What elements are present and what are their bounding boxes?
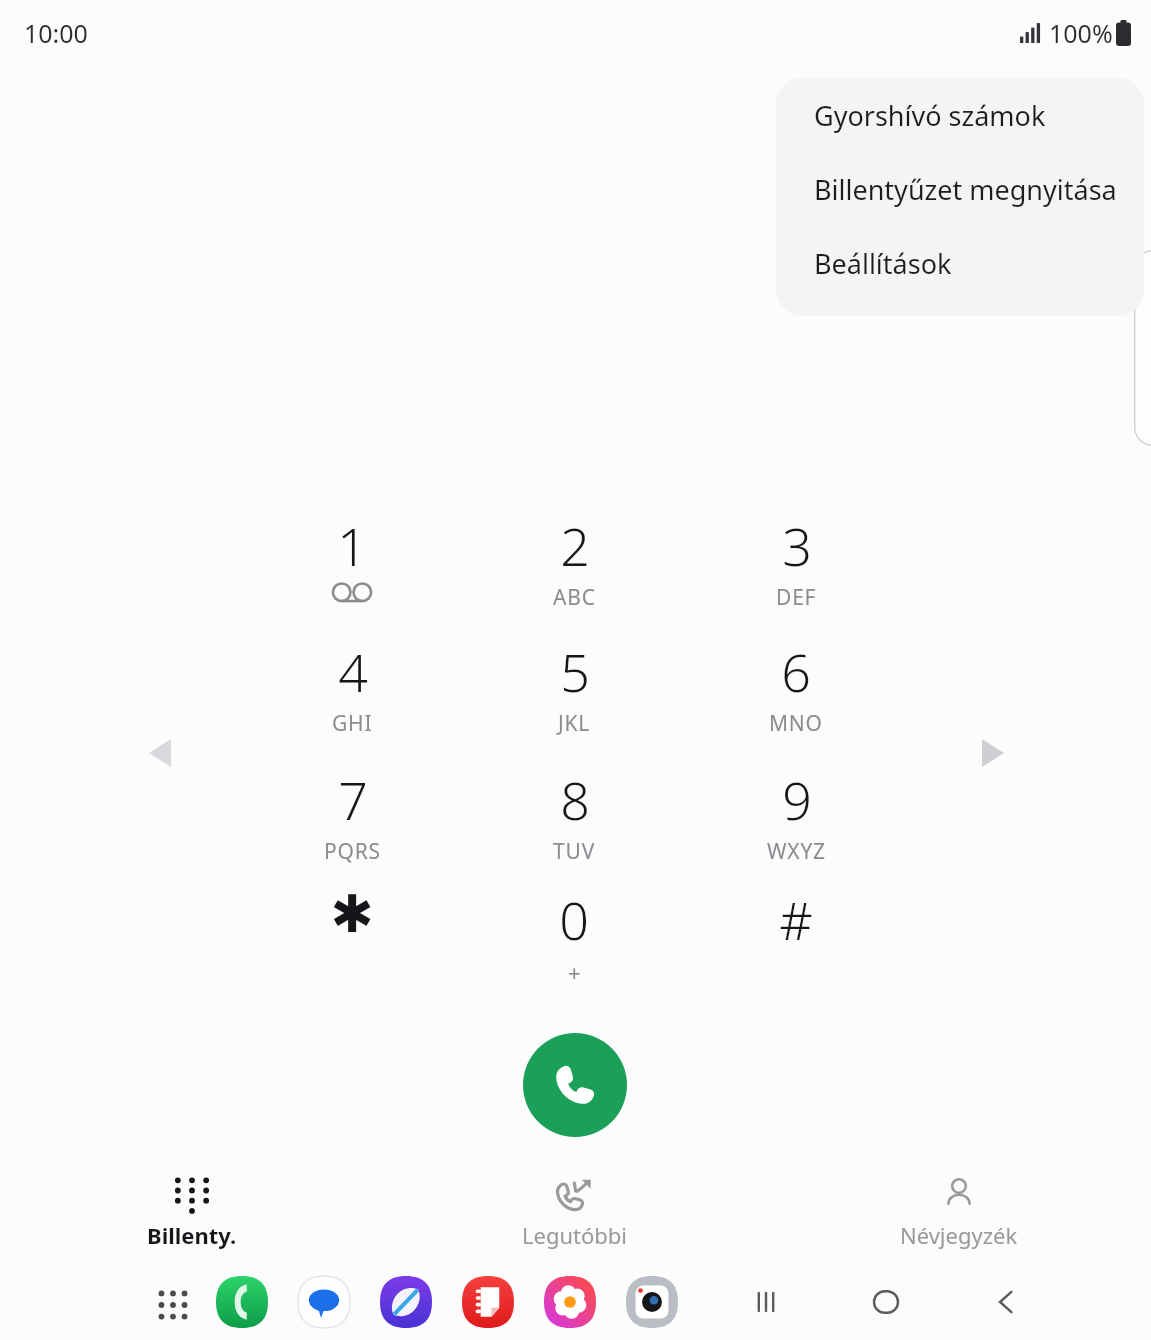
- staticText: JKL: [558, 709, 591, 738]
- button[interactable]: Billenty.: [0, 1172, 383, 1254]
- button[interactable]: Billentyűzet megnyitása: [776, 152, 1144, 226]
- staticText: #: [779, 884, 813, 955]
- staticText: 3: [782, 510, 812, 581]
- staticText: Legutóbbi: [522, 1220, 628, 1250]
- button[interactable]: 3: [721, 510, 871, 622]
- button[interactable]: Messages: [296, 1274, 352, 1330]
- staticText: 10:00: [24, 16, 88, 50]
- staticText: Névjegyzék: [900, 1220, 1018, 1250]
- button[interactable]: Recents: [740, 1276, 792, 1328]
- staticText: 2: [560, 510, 590, 581]
- button[interactable]: Névjegyzék: [767, 1172, 1151, 1254]
- button[interactable]: Gyorshívó számok: [776, 78, 1144, 152]
- button[interactable]: 8: [499, 764, 649, 876]
- staticText: ✱: [330, 884, 374, 945]
- button[interactable]: 4: [277, 636, 427, 748]
- button[interactable]: 2: [499, 510, 649, 622]
- button[interactable]: Previous page: [130, 722, 190, 784]
- staticText: 100%: [1049, 16, 1113, 50]
- button[interactable]: Internet: [378, 1274, 434, 1330]
- staticText: Billentyűzet megnyitása: [814, 171, 1117, 208]
- button[interactable]: 9: [721, 764, 871, 876]
- staticText: 7: [338, 764, 368, 835]
- staticText: GHI: [332, 709, 373, 738]
- staticText: Billenty.: [147, 1220, 237, 1250]
- staticText: 4: [338, 636, 368, 707]
- button[interactable]: 6: [721, 636, 871, 748]
- staticText: 1: [337, 510, 367, 581]
- staticText: PQRS: [324, 837, 381, 866]
- staticText: Gyorshívó számok: [814, 97, 1046, 134]
- staticText: 9: [782, 764, 812, 835]
- button[interactable]: Phone: [214, 1274, 270, 1330]
- button[interactable]: Camera: [624, 1274, 680, 1330]
- button[interactable]: Back: [980, 1276, 1032, 1328]
- staticText: 5: [560, 636, 590, 707]
- button[interactable]: 7: [277, 764, 427, 876]
- button[interactable]: Home: [860, 1276, 912, 1328]
- button[interactable]: 0: [499, 884, 649, 996]
- button[interactable]: Legutóbbi: [383, 1172, 767, 1254]
- button[interactable]: Call: [523, 1033, 627, 1137]
- staticText: WXYZ: [767, 837, 826, 866]
- staticText: MNO: [769, 709, 823, 738]
- button[interactable]: Next page: [963, 722, 1023, 784]
- button[interactable]: 1: [277, 510, 427, 622]
- button[interactable]: Beállítások: [776, 226, 1144, 300]
- staticText: TUV: [553, 837, 596, 866]
- staticText: DEF: [776, 583, 817, 612]
- button[interactable]: Gallery: [542, 1274, 598, 1330]
- button[interactable]: Notes: [460, 1274, 516, 1330]
- button[interactable]: 5: [499, 636, 649, 748]
- staticText: ABC: [553, 583, 596, 612]
- staticText: 6: [781, 636, 811, 707]
- staticText: +: [568, 957, 581, 987]
- staticText: Beállítások: [814, 245, 952, 282]
- button[interactable]: All apps: [150, 1282, 196, 1328]
- staticText: 8: [560, 764, 590, 835]
- staticText: 0: [559, 884, 589, 955]
- button[interactable]: #: [721, 884, 871, 996]
- button[interactable]: ✱: [277, 884, 427, 996]
